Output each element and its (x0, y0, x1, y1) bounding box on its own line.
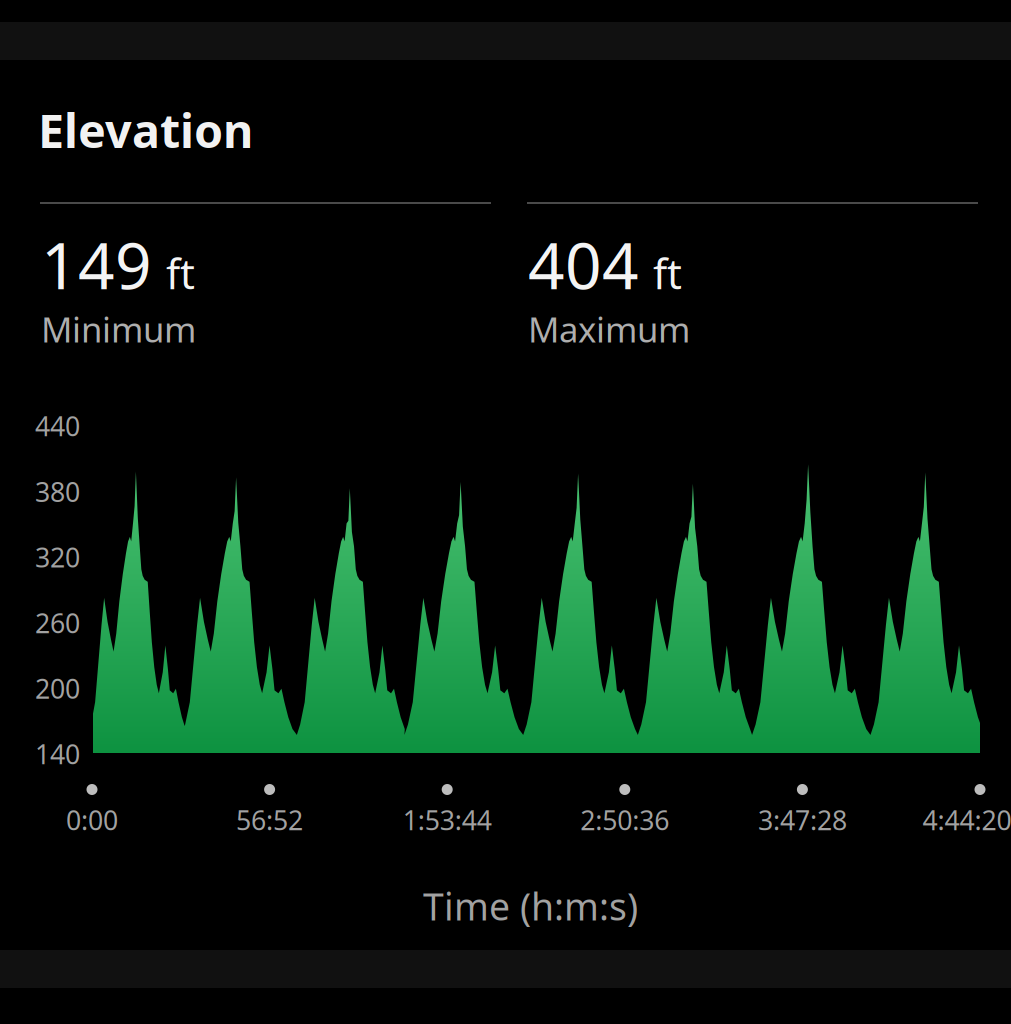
staticText: 140 (35, 736, 80, 772)
staticText: 3:47:28 (758, 802, 847, 838)
staticText: ft (653, 246, 682, 301)
staticText: 56:52 (236, 802, 303, 838)
staticText: 4:44:20 (922, 802, 1011, 838)
staticText: 149 (41, 222, 152, 307)
staticText: 1:53:44 (403, 802, 492, 838)
staticText: ft (166, 246, 195, 301)
staticText: Time (h:m:s) (423, 881, 638, 931)
staticText: Maximum (528, 306, 690, 352)
staticText: 320 (35, 539, 80, 575)
staticText: 380 (35, 474, 80, 509)
staticText: 440 (35, 408, 80, 444)
staticText: Minimum (41, 306, 196, 352)
staticText: 260 (35, 605, 80, 640)
staticText: Elevation (38, 99, 253, 161)
staticText: 404 (528, 222, 639, 307)
staticText: 0:00 (66, 802, 118, 838)
staticText: 2:50:36 (580, 802, 669, 838)
staticText: 200 (35, 671, 80, 706)
